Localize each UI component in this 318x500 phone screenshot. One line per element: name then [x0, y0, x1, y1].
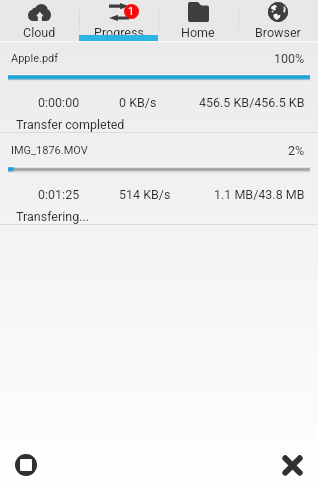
staticText: 1.1 MB/43.8 MB	[214, 187, 305, 202]
button[interactable]: Apple.pdf	[0, 41, 318, 133]
staticText: Browser	[255, 25, 301, 40]
button[interactable]: Browser	[238, 0, 318, 42]
staticText: Apple.pdf	[11, 52, 59, 65]
staticText: Transfering...	[16, 209, 90, 224]
staticText: 100%	[274, 51, 305, 66]
button[interactable]: 1	[79, 0, 158, 42]
button[interactable]: Cloud	[0, 0, 79, 42]
button[interactable]: IMG_1876.MOV	[0, 133, 318, 225]
staticText: IMG_1876.MOV	[11, 144, 88, 157]
staticText: 1	[128, 5, 135, 18]
staticText: 514 KB/s	[119, 187, 171, 202]
staticText: 456.5 KB/456.5 KB	[199, 95, 305, 110]
staticText: 2%	[288, 143, 305, 158]
staticText: Transfer completed	[16, 117, 125, 132]
button[interactable]: Close	[270, 443, 314, 487]
staticText: Progress	[94, 25, 144, 40]
button[interactable]: Home	[158, 0, 238, 42]
staticText: Cloud	[23, 25, 56, 40]
staticText: 0:00:00	[38, 95, 80, 110]
staticText: 0:01:25	[38, 187, 80, 202]
staticText: 0 KB/s	[119, 95, 157, 110]
staticText: Home	[181, 25, 215, 40]
button[interactable]: Stop	[4, 443, 48, 487]
